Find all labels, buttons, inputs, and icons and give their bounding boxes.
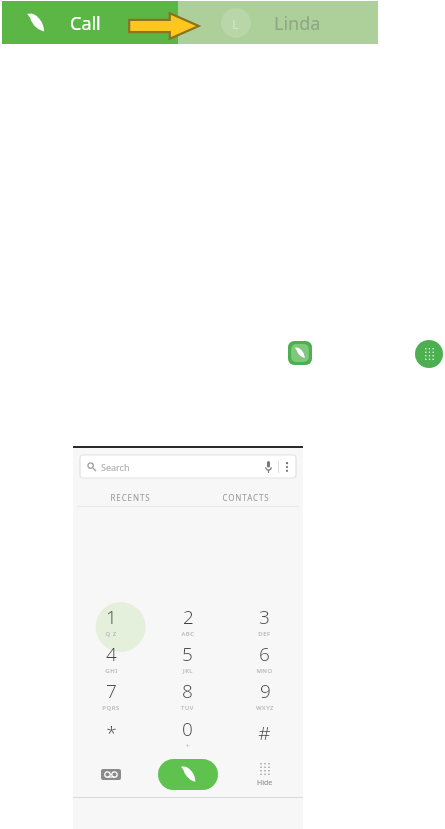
staticText: RECENTS: [110, 492, 151, 503]
button[interactable]: 7: [73, 676, 149, 714]
button[interactable]: 0: [149, 714, 226, 752]
staticText: Hide: [257, 778, 273, 788]
staticText: L: [232, 15, 239, 33]
button[interactable]: Voicemail: [73, 752, 149, 797]
other: Call: [26, 13, 46, 33]
staticText: Q Z: [105, 630, 117, 638]
button[interactable]: Dialpad: [415, 340, 443, 368]
staticText: ABC: [181, 630, 195, 638]
staticText: GHI: [105, 667, 118, 675]
button[interactable]: 6: [226, 639, 303, 676]
button[interactable]: 1: [73, 602, 149, 639]
staticText: TUV: [181, 704, 194, 712]
button[interactable]: 9: [226, 676, 303, 714]
staticText: PQRS: [102, 704, 120, 712]
staticText: MNO: [256, 667, 273, 675]
button[interactable]: 2: [149, 602, 226, 639]
staticText: #: [258, 720, 271, 746]
staticText: WXYZ: [256, 704, 274, 712]
staticText: Linda: [274, 11, 321, 36]
button[interactable]: 4: [73, 639, 149, 676]
staticText: +: [186, 742, 190, 750]
staticText: 2: [183, 604, 194, 630]
staticText: JKL: [183, 667, 193, 675]
staticText: DEF: [258, 630, 271, 638]
button[interactable]: Call: [158, 759, 218, 790]
staticText: 4: [106, 641, 117, 667]
staticText: CONTACTS: [222, 492, 270, 503]
other: More options: [285, 461, 289, 473]
staticText: 9: [260, 678, 271, 704]
button[interactable]: 5: [149, 639, 226, 676]
button[interactable]: 3: [226, 602, 303, 639]
other: Voice search: [265, 461, 272, 473]
button[interactable]: *: [73, 714, 149, 752]
staticText: 5: [182, 641, 193, 667]
staticText: Search: [101, 461, 130, 473]
button[interactable]: Hide dialpad: [226, 752, 303, 797]
button[interactable]: Search: [80, 455, 296, 478]
staticText: 8: [182, 678, 193, 704]
staticText: 7: [106, 678, 117, 704]
staticText: Call: [70, 11, 101, 36]
button[interactable]: CONTACTS: [188, 488, 303, 506]
staticText: 6: [259, 641, 270, 667]
button[interactable]: Phone app: [288, 341, 312, 365]
staticText: 3: [259, 604, 270, 630]
button[interactable]: #: [226, 714, 303, 752]
button[interactable]: RECENTS: [73, 488, 188, 506]
staticText: 1: [106, 604, 117, 630]
staticText: *: [106, 720, 117, 746]
button[interactable]: Call: [2, 1, 378, 44]
button[interactable]: 8: [149, 676, 226, 714]
staticText: 0: [182, 716, 193, 742]
